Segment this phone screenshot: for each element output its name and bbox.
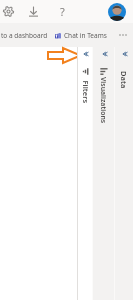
staticText: Data xyxy=(119,71,129,89)
button[interactable]: Data xyxy=(115,47,133,300)
button[interactable]: Download xyxy=(17,0,50,23)
staticText: Visualizations xyxy=(99,77,108,124)
staticText: to a dashboard xyxy=(1,31,48,40)
button[interactable]: Help xyxy=(50,0,74,23)
staticText: Chat in Teams xyxy=(64,31,107,40)
button[interactable]: Chat in Teams xyxy=(54,31,108,40)
button[interactable]: More options xyxy=(116,28,130,42)
staticText: Filters xyxy=(80,80,90,103)
staticText: ? xyxy=(60,4,65,19)
button[interactable]: Visualizations xyxy=(93,47,114,300)
button[interactable]: Filters xyxy=(78,47,92,300)
button[interactable]: Settings xyxy=(0,0,17,23)
button[interactable]: Account xyxy=(108,3,126,21)
